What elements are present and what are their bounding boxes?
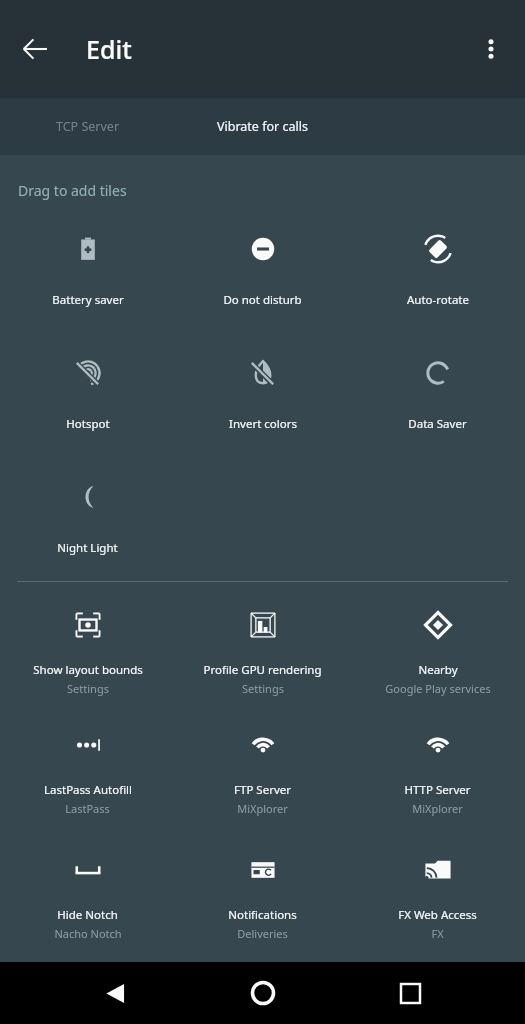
staticText: Settings bbox=[242, 681, 284, 696]
button[interactable]: Night Light bbox=[0, 466, 175, 581]
button[interactable]: FX Web Access bbox=[350, 839, 525, 962]
staticText: Nacho Notch bbox=[54, 926, 122, 941]
button[interactable]: Do not disturb bbox=[175, 218, 350, 342]
button[interactable]: Battery saver bbox=[0, 218, 175, 342]
button[interactable]: Back bbox=[11, 25, 59, 73]
button[interactable]: Invert colors bbox=[175, 342, 350, 466]
button[interactable]: Home bbox=[231, 962, 295, 1024]
staticText: Settings bbox=[67, 681, 109, 696]
button[interactable]: LastPass Autofill bbox=[0, 714, 175, 839]
staticText: Profile GPU rendering bbox=[203, 662, 322, 678]
button[interactable]: Hotspot bbox=[0, 342, 175, 466]
button[interactable]: Vibrate for calls bbox=[217, 118, 308, 135]
staticText: Hotspot bbox=[66, 416, 110, 432]
staticText: Nearby bbox=[418, 662, 458, 678]
staticText: Do not disturb bbox=[223, 292, 302, 308]
button[interactable]: Back bbox=[83, 962, 147, 1024]
button[interactable]: Auto-rotate bbox=[350, 218, 525, 342]
staticText: LastPass bbox=[65, 801, 110, 816]
staticText: MiXplorer bbox=[412, 801, 463, 816]
button[interactable]: Hide Notch bbox=[0, 839, 175, 962]
staticText: Battery saver bbox=[52, 292, 124, 308]
button[interactable]: Recent apps bbox=[378, 962, 442, 1024]
staticText: LastPass Autofill bbox=[44, 782, 132, 798]
button[interactable]: Profile GPU rendering bbox=[175, 594, 350, 714]
staticText: FTP Server bbox=[234, 782, 291, 798]
button[interactable]: Nearby bbox=[350, 594, 525, 714]
staticText: HTTP Server bbox=[404, 782, 471, 798]
button[interactable]: HTTP Server bbox=[350, 714, 525, 839]
button[interactable]: TCP Server bbox=[56, 118, 120, 135]
button[interactable]: FTP Server bbox=[175, 714, 350, 839]
staticText: Data Saver bbox=[408, 416, 467, 432]
staticText: Hide Notch bbox=[57, 907, 118, 923]
button[interactable]: Data Saver bbox=[350, 342, 525, 466]
staticText: Night Light bbox=[57, 540, 118, 556]
button[interactable]: Notifications bbox=[175, 839, 350, 962]
staticText: FX Web Access bbox=[398, 907, 477, 923]
staticText: Drag to add tiles bbox=[18, 181, 127, 200]
staticText: FX bbox=[431, 926, 444, 941]
staticText: Show layout bounds bbox=[33, 662, 143, 678]
button[interactable]: More options bbox=[467, 25, 515, 73]
staticText: Notifications bbox=[228, 907, 297, 923]
staticText: Invert colors bbox=[229, 416, 297, 432]
staticText: MiXplorer bbox=[237, 801, 288, 816]
staticText: Edit bbox=[86, 32, 132, 66]
staticText: Auto-rotate bbox=[407, 292, 469, 308]
staticText: Deliveries bbox=[237, 926, 288, 941]
staticText: Google Play services bbox=[385, 681, 491, 696]
button[interactable]: Show layout bounds bbox=[0, 594, 175, 714]
